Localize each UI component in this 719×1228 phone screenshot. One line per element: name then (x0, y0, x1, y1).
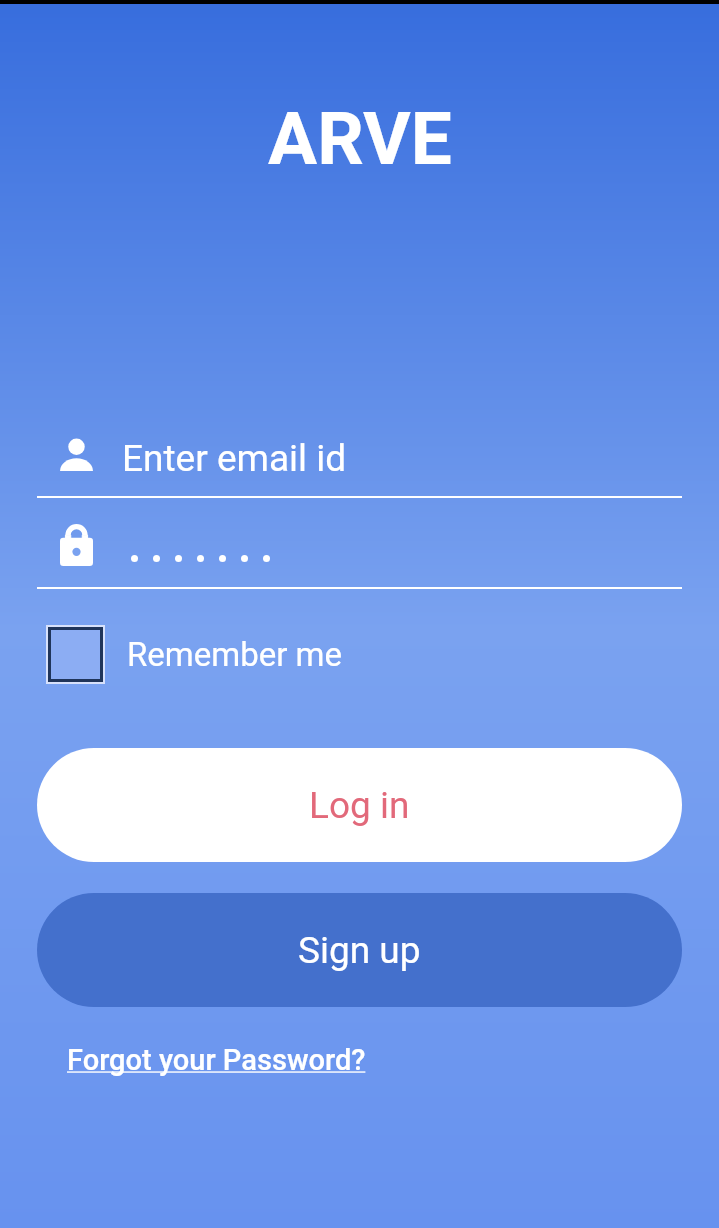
staticText: Forgot your Password? (67, 1043, 366, 1077)
other: Password (60, 524, 93, 566)
button[interactable]: Remember me (46, 625, 343, 684)
button[interactable]: Forgot your Password? (67, 1043, 366, 1077)
staticText: Remember me (127, 635, 343, 674)
staticText: ARVE (268, 96, 452, 182)
staticText: Log in (309, 784, 410, 827)
button[interactable] (131, 555, 270, 562)
staticText: Enter email id (122, 437, 347, 480)
button[interactable]: Log in (37, 748, 682, 862)
other: Account (60, 438, 93, 471)
button[interactable]: Enter email id (122, 437, 347, 480)
staticText: Sign up (298, 929, 421, 972)
button[interactable]: Sign up (37, 893, 682, 1007)
